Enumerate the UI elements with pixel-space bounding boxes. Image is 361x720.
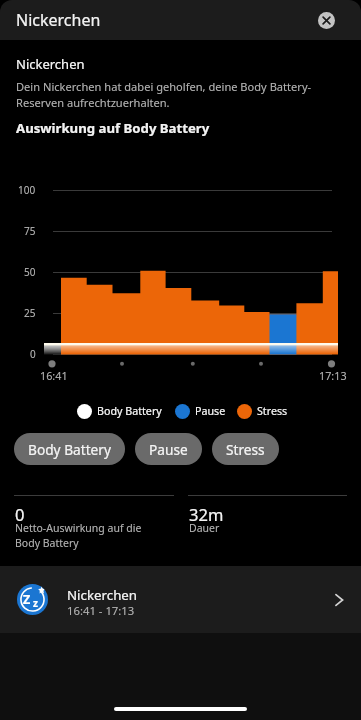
staticText: 75 <box>24 224 36 238</box>
staticText: Pause <box>149 440 188 459</box>
button[interactable]: Z <box>0 566 361 633</box>
staticText: 100 <box>18 183 36 197</box>
staticText: Z <box>23 591 31 608</box>
staticText: 0 <box>15 503 25 525</box>
staticText: Nickerchen <box>67 586 138 604</box>
button[interactable]: Body Battery <box>14 433 125 465</box>
staticText: Pause <box>195 404 226 419</box>
button[interactable]: Pause <box>135 433 202 465</box>
button[interactable]: Schliessen <box>318 12 335 29</box>
staticText: 17:13 <box>319 368 347 383</box>
staticText: Nickerchen <box>16 55 85 73</box>
staticText: 25 <box>24 306 36 320</box>
staticText: z <box>33 596 38 610</box>
staticText: Stress <box>257 404 288 419</box>
staticText: Dauer <box>189 521 220 535</box>
staticText: Dein Nickerchen hat dabei geholfen, dein… <box>16 79 312 110</box>
staticText: Netto-Auswirkung auf die Body Battery <box>15 521 142 550</box>
staticText: 50 <box>24 265 36 279</box>
staticText: Body Battery <box>28 440 111 459</box>
staticText: 16:41 - 17:13 <box>67 603 135 618</box>
button[interactable]: Stress <box>212 433 279 465</box>
staticText: Auswirkung auf Body Battery <box>16 119 210 137</box>
staticText: 0 <box>30 347 36 361</box>
staticText: Stress <box>226 440 265 459</box>
staticText: Nickerchen <box>16 9 101 31</box>
staticText: 16:41 <box>40 368 68 383</box>
staticText: 32m <box>189 503 224 525</box>
staticText: Body Battery <box>97 404 162 419</box>
